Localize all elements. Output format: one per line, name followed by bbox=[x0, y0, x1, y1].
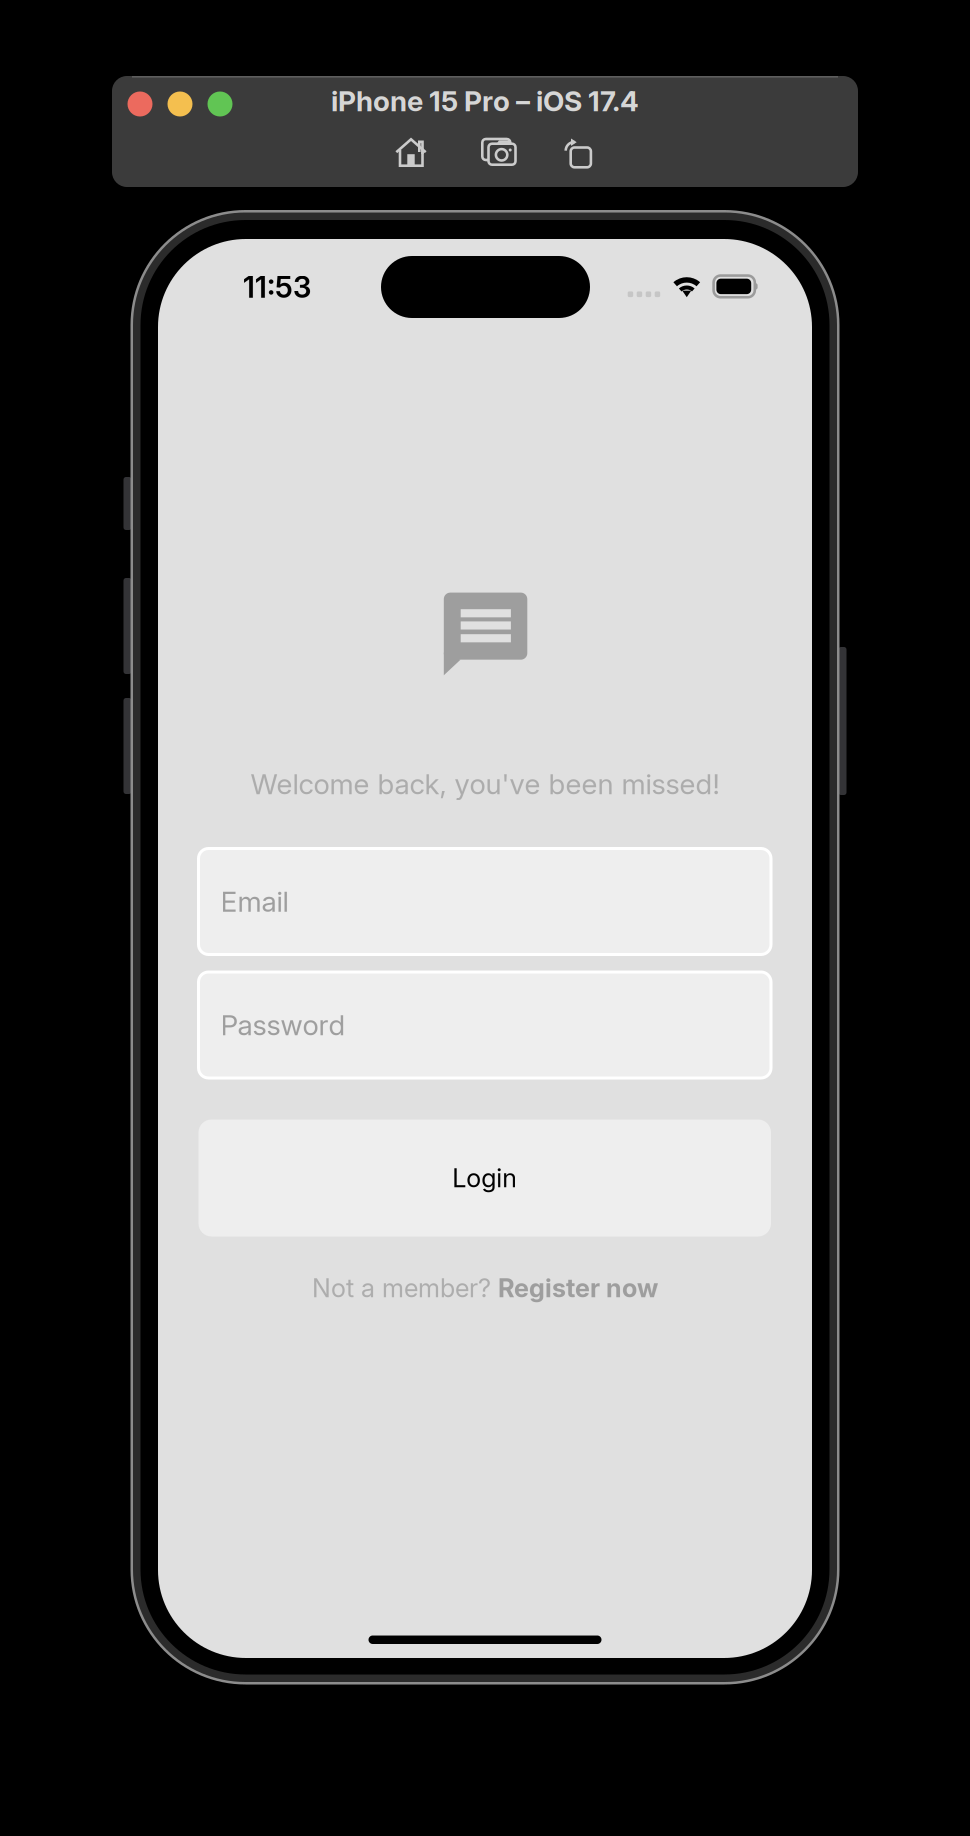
staticText: Welcome back, you've been missed! bbox=[250, 767, 719, 801]
button[interactable]: Login bbox=[198, 1119, 771, 1236]
button[interactable]: Home bbox=[395, 138, 427, 167]
staticText: Not a member? bbox=[312, 1273, 498, 1303]
button[interactable]: Minimise bbox=[167, 91, 192, 116]
staticText: iPhone 15 Pro – iOS 17.4 bbox=[331, 84, 639, 118]
button[interactable]: Not a member? bbox=[312, 1273, 658, 1303]
button[interactable]: Rotate bbox=[565, 137, 592, 168]
button[interactable]: Password bbox=[198, 972, 771, 1078]
button[interactable]: Email bbox=[198, 848, 771, 954]
staticText: Password bbox=[220, 1008, 345, 1042]
staticText: Login bbox=[452, 1163, 517, 1193]
button[interactable]: Close bbox=[127, 91, 152, 116]
staticText: Email bbox=[220, 885, 288, 918]
button[interactable]: Zoom bbox=[207, 91, 232, 116]
staticText: Register now bbox=[498, 1273, 658, 1303]
button[interactable]: Screenshot bbox=[482, 138, 516, 167]
staticText: 11:53 bbox=[243, 269, 311, 305]
